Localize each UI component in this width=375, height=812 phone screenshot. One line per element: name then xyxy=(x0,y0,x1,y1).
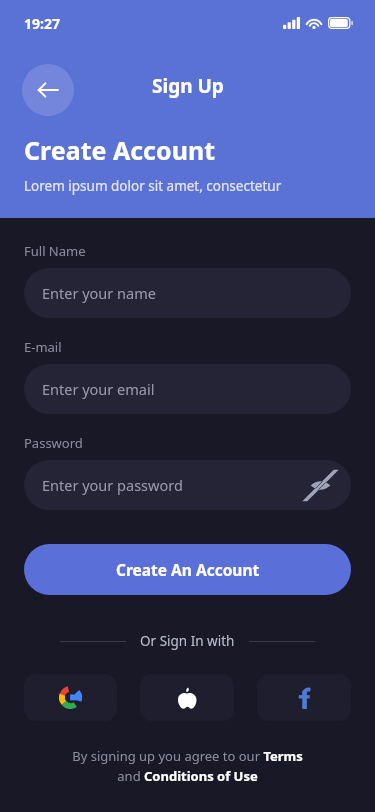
button[interactable]: Sign in with Facebook xyxy=(257,674,351,721)
staticText: Lorem ipsum dolor sit amet, consectetur xyxy=(24,177,282,195)
staticText: 19:27 xyxy=(24,14,60,33)
button[interactable]: Sign in with Google xyxy=(24,674,117,721)
button[interactable]: Enter your email xyxy=(24,364,351,414)
staticText: Full Name xyxy=(24,242,86,260)
button[interactable]: Create An Account xyxy=(24,544,351,595)
button[interactable]: Back xyxy=(22,64,74,116)
staticText: Create An Account xyxy=(116,559,260,580)
staticText: Enter your email xyxy=(42,379,155,399)
staticText: Sign Up xyxy=(152,73,224,99)
staticText: Enter your password xyxy=(42,475,183,495)
button[interactable]: Toggle password visibility xyxy=(307,472,333,498)
staticText: Password xyxy=(24,434,83,452)
staticText: Enter your name xyxy=(42,283,156,303)
button[interactable]: Sign in with Apple xyxy=(140,674,234,721)
button[interactable]: By signing up you agree to our Terms and… xyxy=(24,747,351,785)
button[interactable]: Enter your password xyxy=(24,460,351,510)
staticText: E-mail xyxy=(24,338,62,356)
staticText: Create Account xyxy=(24,133,215,167)
staticText: Or Sign In with xyxy=(140,632,235,650)
button[interactable]: Enter your name xyxy=(24,268,351,318)
